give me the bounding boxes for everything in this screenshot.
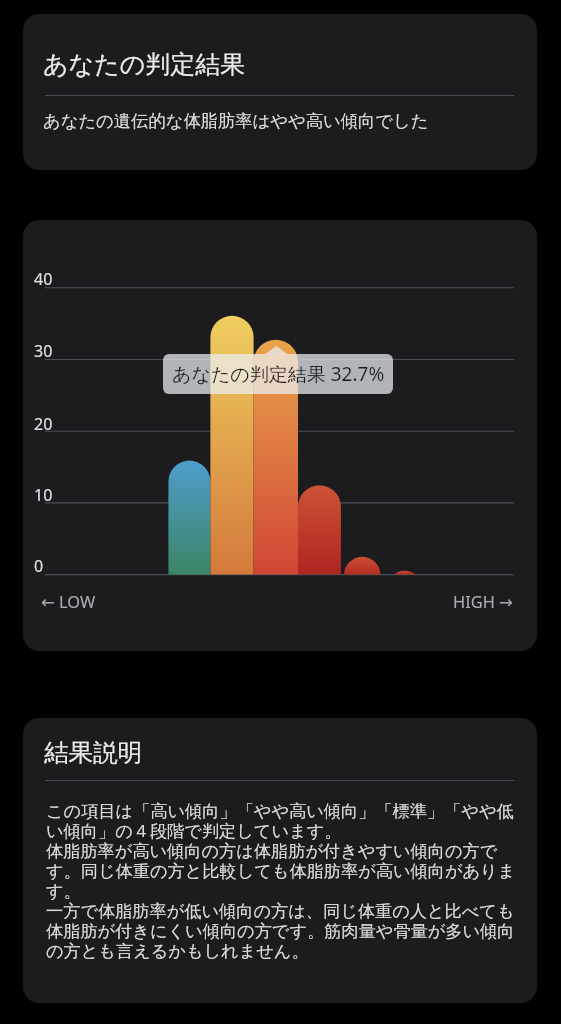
staticText: 10: [34, 484, 53, 506]
staticText: あなたの遺伝的な体脂肪率はやや高い傾向でした: [43, 110, 429, 132]
button[interactable]: ← LOW: [41, 590, 96, 612]
staticText: この項目は「高い傾向」「やや高い傾向」「標準」「やや低: [46, 800, 514, 820]
staticText: い傾向」の４段階で判定しています。: [46, 820, 342, 840]
staticText: 40: [34, 268, 53, 290]
staticText: す。同じ体重の方と比較しても体脂肪率が高い傾向がありま: [46, 860, 516, 880]
staticText: 30: [34, 340, 53, 362]
button[interactable]: HIGH →: [453, 590, 513, 612]
staticText: 結果説明: [44, 737, 143, 765]
button[interactable]: あなたの判定結果: [23, 14, 537, 170]
staticText: 体脂肪率が高い傾向の方は体脂肪が付きやすい傾向の方で: [46, 840, 498, 860]
staticText: ← LOW: [41, 590, 96, 612]
button[interactable]: 結果説明: [23, 718, 537, 1003]
staticText: HIGH →: [453, 590, 513, 612]
staticText: 体脂肪が付きにくい傾向の方です。筋肉量や骨量が多い傾向: [46, 920, 515, 940]
staticText: 0: [34, 555, 44, 577]
staticText: 一方で体脂肪率が低い傾向の方は、同じ体重の人と比べても: [46, 900, 515, 920]
staticText: あなたの判定結果 32.7%: [172, 361, 385, 387]
staticText: す。: [46, 880, 81, 900]
staticText: の方とも言えるかもしれません。: [46, 940, 309, 960]
staticText: 20: [34, 413, 53, 435]
staticText: あなたの判定結果: [43, 49, 246, 79]
button[interactable]: あなたの判定結果 32.7%: [163, 354, 393, 394]
